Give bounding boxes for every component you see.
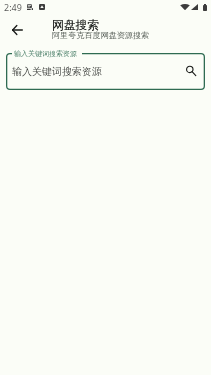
staticText: 网盘搜索: [52, 18, 100, 33]
staticText: 输入关键词搜索资源: [14, 49, 77, 58]
button[interactable]: Back: [3, 16, 31, 44]
staticText: 网盘搜索: [52, 18, 100, 33]
staticText: 2:49: [4, 1, 22, 13]
staticText: 输入关键词搜索资源: [12, 65, 102, 78]
button[interactable]: [6, 53, 205, 90]
button[interactable]: Search: [182, 62, 200, 80]
staticText: 阿里夸克百度网盘资源搜索: [52, 30, 150, 40]
